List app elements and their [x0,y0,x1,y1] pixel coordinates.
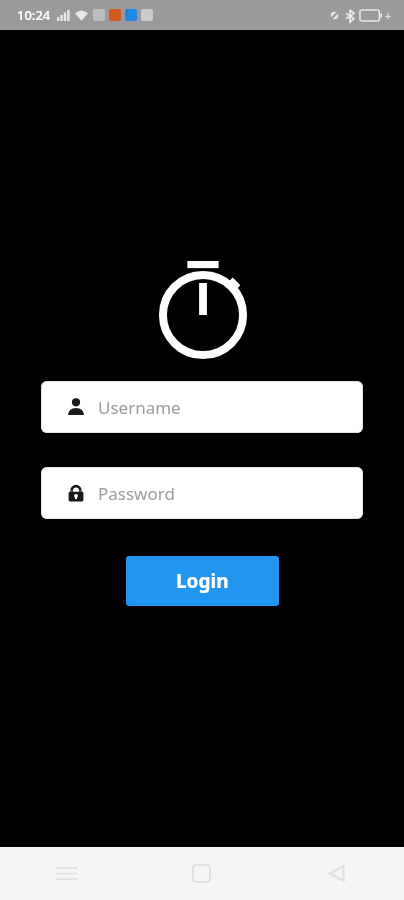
other: Password [66,483,86,503]
staticText: 10:24 [17,6,51,24]
staticText: Username [98,396,181,419]
staticText: + [385,8,392,23]
button[interactable]: Password [41,467,363,519]
staticText: Login [176,568,229,594]
other: Username [66,397,86,417]
staticText: Password [98,482,175,505]
button[interactable]: Login [126,556,279,606]
button[interactable]: Username [41,381,363,433]
